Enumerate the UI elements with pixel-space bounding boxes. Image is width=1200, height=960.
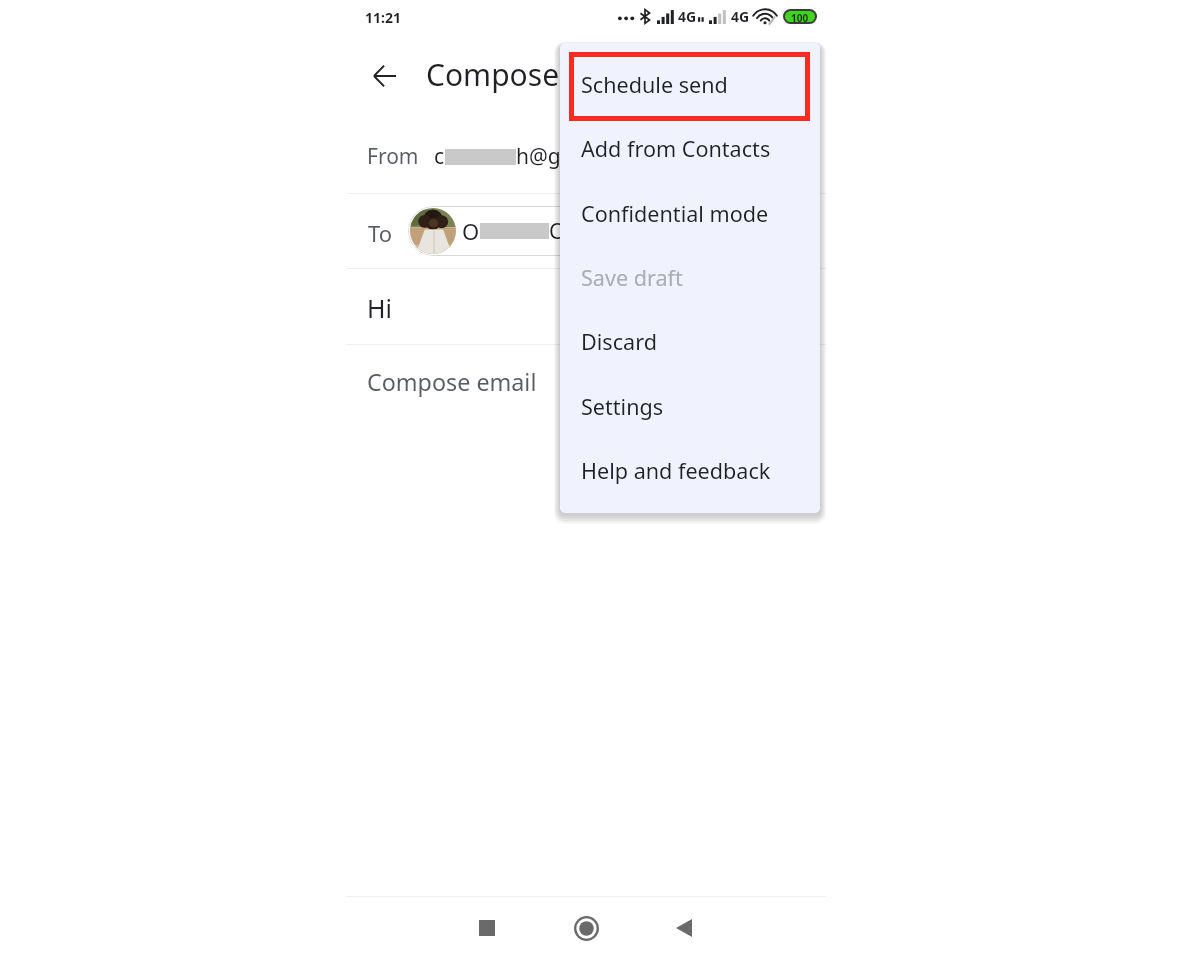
staticText: Hi <box>367 291 392 325</box>
staticText: Add from Contacts <box>581 134 771 163</box>
staticText: Compose email <box>367 366 537 398</box>
staticText: From <box>367 142 419 171</box>
staticText: Settings <box>581 392 664 421</box>
staticText: h@gm <box>516 142 581 171</box>
button[interactable]: O <box>408 206 678 256</box>
staticText: Confidential mode <box>581 199 769 228</box>
staticText: O <box>462 216 480 246</box>
button[interactable]: Discard <box>560 309 820 373</box>
staticText: Save draft <box>581 263 683 292</box>
staticText: 4G <box>731 7 750 26</box>
staticText: Ch <box>549 217 576 246</box>
button[interactable]: Home <box>562 904 610 952</box>
button[interactable]: Back <box>660 904 708 952</box>
staticText: Schedule send <box>581 70 728 99</box>
staticText: 11:21 <box>365 8 401 27</box>
staticText: Help and feedback <box>581 456 771 485</box>
button[interactable]: Save draft <box>560 245 820 309</box>
button[interactable]: Recent apps <box>463 904 511 952</box>
staticText: c <box>434 142 445 171</box>
staticText: 4G <box>678 7 697 26</box>
button[interactable]: Add from Contacts <box>560 116 820 180</box>
button[interactable]: Back <box>361 52 409 100</box>
button[interactable]: Schedule send <box>560 52 820 116</box>
staticText: Discard <box>581 327 657 356</box>
staticText: Compose <box>426 54 560 95</box>
button[interactable]: Help and feedback <box>560 438 820 502</box>
staticText: 100 <box>791 11 809 22</box>
staticText: To <box>368 218 393 248</box>
button[interactable]: Settings <box>560 374 820 438</box>
button[interactable]: Confidential mode <box>560 181 820 245</box>
